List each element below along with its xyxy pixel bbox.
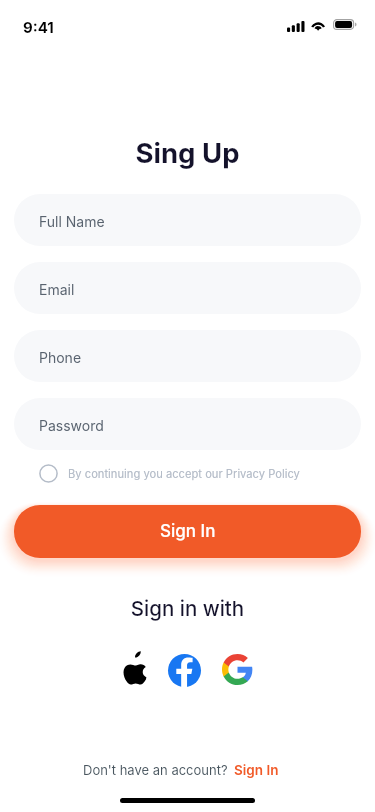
staticText: Sign In [160, 521, 216, 542]
button[interactable]: Sign in with Apple [116, 649, 158, 689]
staticText: By continuing you accept our Privacy Pol… [68, 467, 300, 481]
button[interactable]: Sign In [234, 762, 279, 778]
button[interactable]: Password [14, 398, 361, 450]
button[interactable]: Full Name [14, 194, 361, 246]
button[interactable]: Sign in with Facebook [168, 654, 201, 687]
staticText: Sing Up [0, 136, 375, 169]
staticText: Sign in with [0, 596, 375, 621]
staticText: Don't have an account? [83, 762, 228, 778]
button[interactable]: By continuing you accept our Privacy Pol… [39, 464, 300, 483]
button[interactable]: Sign in with Google [220, 652, 255, 687]
button[interactable]: Email [14, 262, 361, 314]
button[interactable]: Phone [14, 330, 361, 382]
staticText: Full Name [39, 213, 105, 230]
staticText: Phone [39, 349, 82, 366]
staticText: 9:41 [23, 18, 54, 36]
staticText: Email [39, 281, 75, 298]
staticText: Password [39, 417, 104, 434]
button[interactable]: Sign In [14, 505, 361, 558]
